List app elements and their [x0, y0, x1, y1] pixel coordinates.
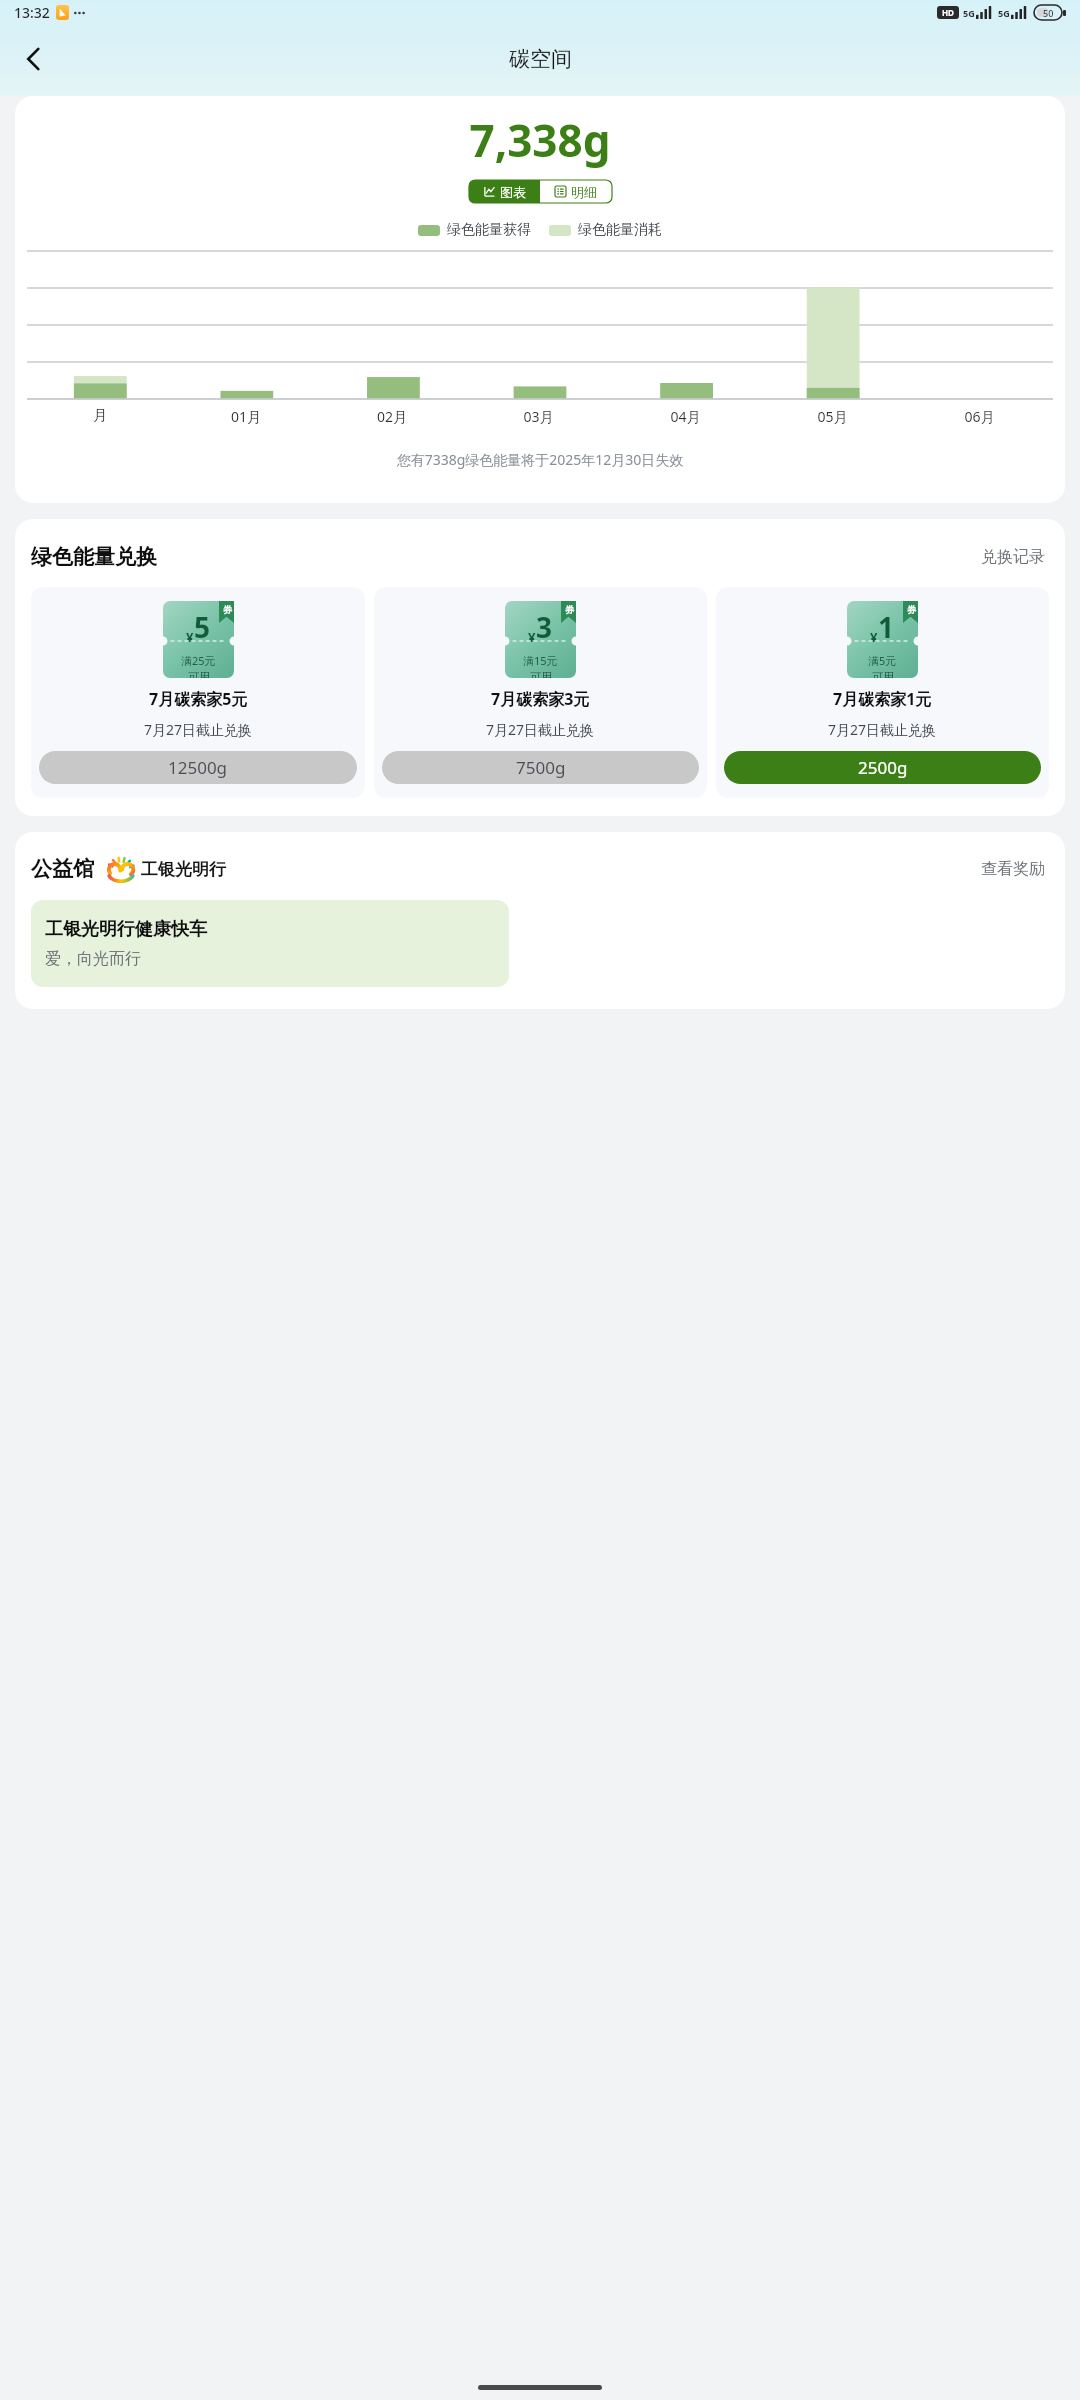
button[interactable]: 图表 [469, 180, 540, 203]
button[interactable]: 12500g [39, 751, 357, 784]
staticText: 明细 [571, 184, 597, 200]
button[interactable]: Back [8, 33, 60, 85]
staticText: 5 [194, 608, 211, 646]
staticText: 公益馆 [31, 856, 94, 882]
staticText: 13:32 [14, 3, 50, 22]
staticText: 绿色能量兑换 [31, 544, 157, 570]
staticText: 03月 [465, 407, 612, 426]
staticText: ¥ [186, 628, 194, 646]
staticText: 兑换记录 [981, 547, 1045, 567]
button[interactable]: 券 [716, 587, 1049, 798]
staticText: 04月 [612, 407, 759, 426]
staticText: 绿色能量获得 [447, 221, 531, 239]
staticText: 05月 [759, 407, 906, 426]
staticText: 5G [963, 7, 975, 19]
staticText: 5G [998, 7, 1010, 19]
staticText: 7月碳索家5元 [149, 688, 248, 710]
staticText: 01月 [173, 407, 319, 426]
staticText: ¥ [528, 628, 536, 646]
staticText: 7月碳索家3元 [491, 688, 590, 710]
staticText: 满15元 [523, 653, 558, 668]
staticText: 满25元 [181, 653, 216, 668]
staticText: 可用 [188, 670, 210, 678]
staticText: 7月27日截止兑换 [828, 720, 937, 739]
staticText: 可用 [530, 670, 552, 678]
staticText: ¥ [870, 628, 878, 646]
button[interactable]: 明细 [540, 180, 612, 203]
staticText: 1 [878, 608, 895, 646]
staticText: 2500g [858, 756, 908, 779]
staticText: 12500g [168, 756, 228, 779]
staticText: HD [942, 7, 954, 18]
staticText: 月 [27, 407, 173, 425]
staticText: 您有7338g绿色能量将于2025年12月30日失效 [15, 450, 1065, 469]
staticText: 满5元 [868, 653, 897, 668]
button[interactable]: 券 [31, 587, 365, 798]
staticText: 碳空间 [509, 46, 572, 72]
staticText: 7,338g [15, 110, 1065, 170]
staticText: 7月27日截止兑换 [486, 720, 595, 739]
button[interactable]: 2500g [724, 751, 1041, 784]
staticText: 7500g [516, 756, 566, 779]
staticText: 券 [907, 604, 916, 615]
staticText: 爱，向光而行 [45, 949, 141, 969]
staticText: 查看奖励 [981, 859, 1045, 879]
staticText: 绿色能量消耗 [578, 221, 662, 239]
staticText: 7月27日截止兑换 [144, 720, 253, 739]
button[interactable]: 券 [374, 587, 707, 798]
button[interactable]: 7500g [382, 751, 699, 784]
button[interactable]: 兑换记录 [977, 543, 1049, 571]
staticText: 06月 [906, 407, 1053, 426]
staticText: 券 [223, 604, 232, 615]
button[interactable]: 工银光明行健康快车 [31, 900, 509, 987]
staticText: 3 [536, 608, 553, 646]
staticText: 图表 [500, 184, 526, 200]
button[interactable]: 查看奖励 [977, 855, 1049, 883]
staticText: 02月 [319, 407, 465, 426]
staticText: 工银光明行健康快车 [45, 918, 207, 941]
staticText: 可用 [872, 670, 894, 678]
staticText: 7月碳索家1元 [833, 688, 932, 710]
staticText: 券 [565, 604, 574, 615]
staticText: 50 [1043, 7, 1054, 19]
staticText: 工银光明行 [141, 859, 226, 880]
